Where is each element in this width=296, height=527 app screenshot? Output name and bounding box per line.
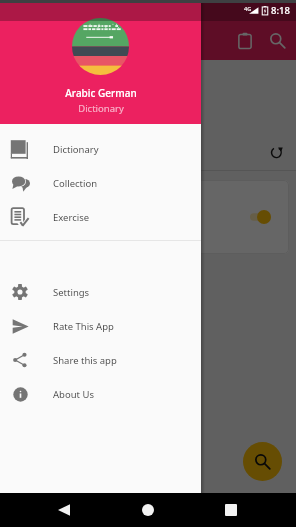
staticText: Search a word	[10, 100, 84, 115]
staticText: Exercise	[53, 211, 90, 224]
staticText: About Us	[53, 388, 94, 401]
button[interactable]: Share this app	[0, 343, 201, 377]
button[interactable]: Recents	[214, 493, 248, 527]
button[interactable]: Collection	[0, 166, 201, 200]
staticText: Dictionary	[78, 102, 124, 115]
button[interactable]: About Us	[0, 377, 201, 411]
staticText: Rate This App	[53, 320, 114, 333]
button[interactable]: Exercise	[0, 200, 201, 234]
staticText: Share this app	[53, 354, 117, 367]
button[interactable]: Rate This App	[0, 309, 201, 343]
button[interactable]: Dictionary	[0, 132, 201, 166]
button[interactable]	[250, 208, 271, 226]
staticText: Settings	[53, 286, 90, 299]
button[interactable]: Home	[131, 493, 165, 527]
staticText: Collection	[53, 177, 98, 190]
button[interactable]: Back	[47, 493, 81, 527]
button[interactable]: Refresh	[266, 142, 286, 162]
button[interactable]: Search	[243, 442, 282, 481]
button[interactable]: Clipboard	[228, 24, 261, 57]
staticText: 4G	[244, 5, 252, 12]
staticText: Dictionary	[53, 143, 99, 156]
button[interactable]: Settings	[0, 275, 201, 309]
staticText: 8:18	[271, 4, 290, 17]
staticText: Arabic German	[65, 86, 137, 100]
button[interactable]: Search	[261, 24, 294, 57]
